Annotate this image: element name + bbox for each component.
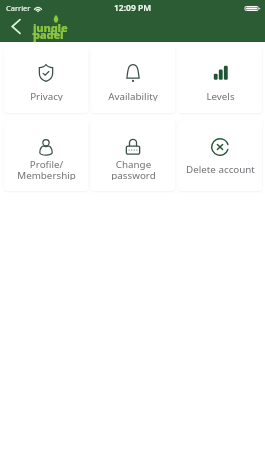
staticText: Levels (206, 90, 235, 101)
button[interactable]: Levels (178, 47, 262, 113)
staticText: Delete account (186, 163, 255, 176)
staticText: 12:09 PM (114, 2, 152, 14)
staticText: Profile/ Membership (17, 158, 76, 180)
button[interactable]: Change password (91, 120, 175, 191)
button[interactable]: Back (4, 17, 28, 41)
button[interactable]: Delete account (178, 120, 262, 191)
button[interactable]: Availability (91, 47, 175, 113)
staticText: padel (33, 27, 64, 42)
button[interactable]: Privacy (4, 47, 88, 113)
button[interactable]: Profile/ Membership (4, 120, 88, 191)
staticText: Privacy (30, 90, 63, 101)
staticText: Change password (111, 158, 156, 180)
staticText: jungle (33, 20, 68, 35)
staticText: Carrier (6, 3, 31, 13)
staticText: Availability (108, 90, 158, 101)
